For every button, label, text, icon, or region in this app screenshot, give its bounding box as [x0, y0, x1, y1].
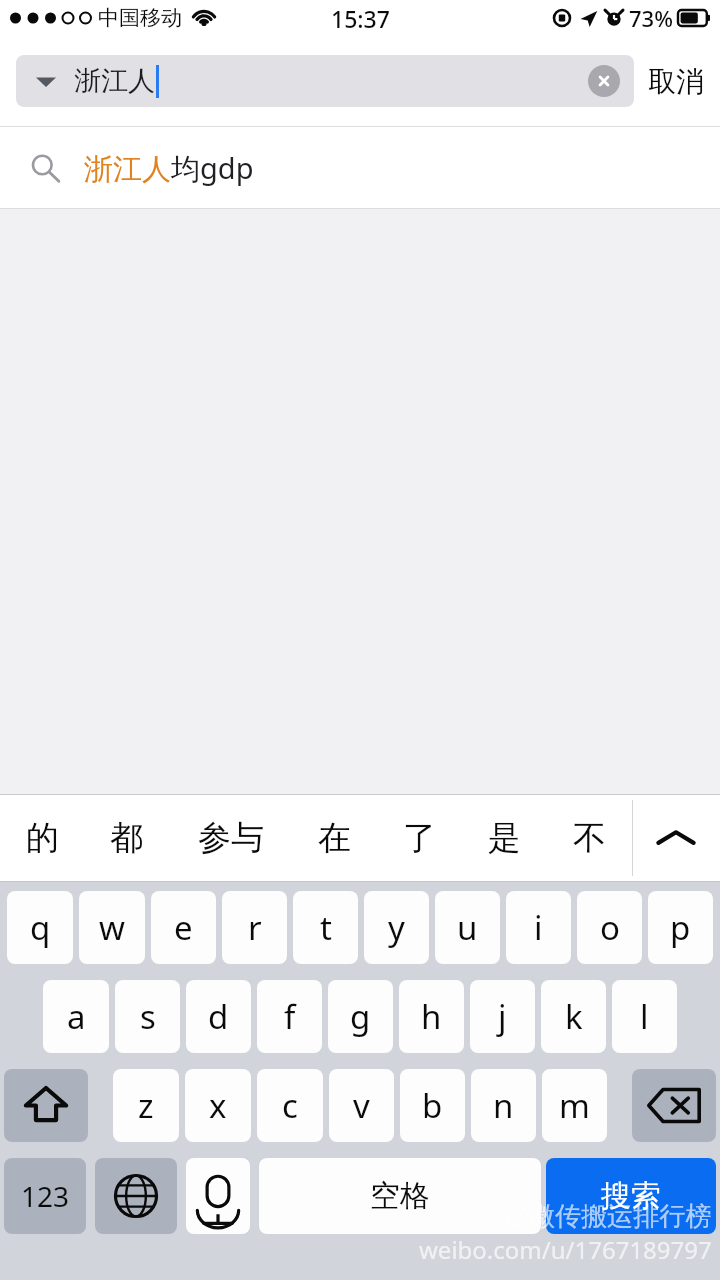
staticText: 取消 [648, 64, 704, 99]
button[interactable]: k [541, 980, 606, 1053]
button[interactable]: q [7, 891, 73, 964]
button[interactable]: 的 [0, 794, 84, 882]
button[interactable]: s [115, 980, 180, 1053]
button[interactable]: Expand candidates [632, 794, 720, 882]
button[interactable]: w [79, 891, 145, 964]
staticText: r [248, 905, 262, 950]
staticText: 123 [21, 1177, 70, 1215]
button[interactable]: 参与 [169, 794, 292, 882]
staticText: f [284, 994, 296, 1039]
button[interactable]: y [364, 891, 429, 964]
button[interactable]: 了 [377, 794, 462, 882]
staticText: 15:37 [331, 3, 390, 34]
staticText: 73% [629, 3, 673, 33]
button[interactable]: 都 [84, 794, 169, 882]
button[interactable]: 123 [4, 1158, 86, 1234]
staticText: 空格 [370, 1177, 430, 1215]
staticText: @微传搬运排行榜 [506, 1197, 712, 1233]
button[interactable]: v [329, 1069, 394, 1142]
button[interactable]: 在 [292, 794, 377, 882]
staticText: j [498, 994, 507, 1039]
button[interactable]: d [186, 980, 251, 1053]
button[interactable]: t [293, 891, 358, 964]
button[interactable]: a [43, 980, 109, 1053]
button[interactable]: Backspace [632, 1069, 716, 1142]
button[interactable]: 是 [462, 794, 547, 882]
button[interactable]: o [577, 891, 642, 964]
staticText: d [208, 994, 229, 1039]
staticText: a [67, 994, 86, 1039]
button[interactable]: h [399, 980, 464, 1053]
button[interactable]: p [648, 891, 713, 964]
staticText: 在 [318, 817, 351, 859]
button[interactable]: Voice input [186, 1158, 250, 1234]
staticText: c [282, 1083, 298, 1128]
button[interactable]: 取消 [648, 64, 704, 99]
staticText: t [320, 905, 332, 950]
staticText: b [422, 1083, 443, 1128]
staticText: 浙江人均gdp [84, 148, 254, 188]
staticText: u [457, 905, 478, 950]
button[interactable]: u [435, 891, 500, 964]
button[interactable]: Clear text [588, 65, 620, 97]
staticText: 中国移动 [98, 5, 182, 31]
button[interactable]: g [328, 980, 393, 1053]
button[interactable]: i [506, 891, 571, 964]
staticText: v [353, 1083, 370, 1128]
staticText: 是 [488, 817, 521, 859]
staticText: q [30, 905, 51, 950]
button[interactable]: b [400, 1069, 465, 1142]
button[interactable]: 空格 [259, 1158, 541, 1234]
staticText: 参与 [198, 817, 264, 859]
button[interactable]: 浙江人 [16, 55, 634, 107]
button[interactable]: n [471, 1069, 536, 1142]
staticText: y [388, 905, 405, 950]
button[interactable]: l [612, 980, 677, 1053]
staticText: 搜索 [601, 1177, 661, 1215]
staticText: n [493, 1083, 514, 1128]
staticText: i [534, 905, 543, 950]
staticText: o [600, 905, 620, 950]
button[interactable]: j [470, 980, 535, 1053]
staticText: x [209, 1083, 227, 1128]
button[interactable]: f [257, 980, 322, 1053]
staticText: z [138, 1083, 154, 1128]
button[interactable]: 不 [547, 794, 632, 882]
button[interactable]: c [257, 1069, 323, 1142]
button[interactable]: Shift [4, 1069, 88, 1142]
staticText: k [565, 994, 583, 1039]
staticText: g [350, 994, 371, 1039]
button[interactable]: x [185, 1069, 251, 1142]
staticText: 都 [110, 817, 143, 859]
button[interactable]: m [542, 1069, 607, 1142]
button[interactable]: 浙江人均gdp [0, 127, 720, 208]
button[interactable]: 搜索 [546, 1158, 716, 1234]
staticText: 不 [573, 817, 606, 859]
button[interactable]: Switch keyboard [95, 1158, 177, 1234]
staticText: h [421, 994, 442, 1039]
staticText: m [559, 1083, 590, 1128]
staticText: p [670, 905, 691, 950]
button[interactable]: z [113, 1069, 179, 1142]
staticText: 的 [26, 817, 59, 859]
staticText: w [99, 905, 125, 950]
staticText: s [140, 994, 156, 1039]
staticText: 了 [403, 817, 436, 859]
staticText: 浙江人 [74, 64, 155, 98]
staticText: weibo.com/u/1767189797 [419, 1233, 712, 1266]
staticText: e [174, 905, 193, 950]
button[interactable]: e [151, 891, 216, 964]
staticText: l [640, 994, 649, 1039]
button[interactable]: r [222, 891, 287, 964]
